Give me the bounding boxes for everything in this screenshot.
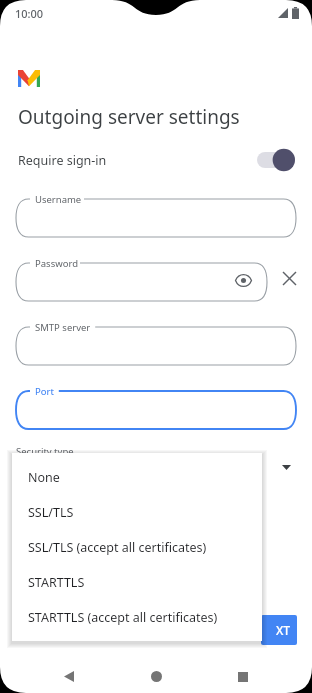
button[interactable]: Clear password <box>276 265 302 291</box>
staticText: Port <box>35 385 54 398</box>
button[interactable]: Back <box>51 660 87 693</box>
button[interactable]: Recent apps <box>225 660 261 693</box>
button[interactable]: Require sign-in <box>0 143 312 177</box>
button[interactable]: XT <box>261 615 297 645</box>
staticText: STARTTLS (accept all certificates) <box>28 609 218 626</box>
staticText: Password <box>35 257 78 270</box>
staticText: Security type <box>16 445 74 458</box>
button[interactable]: SMTP server <box>16 319 296 365</box>
staticText: SSL/TLS (accept all certificates) <box>28 539 207 556</box>
button[interactable]: Home <box>138 660 174 693</box>
staticText: None <box>28 469 60 486</box>
button[interactable]: STARTTLS (accept all certificates) <box>12 600 262 635</box>
staticText: STARTTLS <box>28 574 85 591</box>
staticText: Require sign-in <box>18 152 107 169</box>
button[interactable]: None <box>12 460 262 495</box>
button[interactable]: Password <box>16 255 267 301</box>
button[interactable]: Show password <box>233 270 253 290</box>
button[interactable]: Username <box>16 191 296 237</box>
button[interactable]: SSL/TLS <box>12 495 262 530</box>
button[interactable]: SSL/TLS (accept all certificates) <box>12 530 262 565</box>
button[interactable]: Open security type dropdown <box>276 457 296 477</box>
staticText: Outgoing server settings <box>18 104 240 130</box>
staticText: Username <box>35 193 82 206</box>
button[interactable]: STARTTLS <box>12 565 262 600</box>
staticText: XT <box>276 622 291 638</box>
button[interactable]: Require sign-in toggle <box>256 147 296 173</box>
other: Gmail <box>18 70 40 87</box>
staticText: 10:00 <box>15 6 44 21</box>
button[interactable]: Port <box>16 383 296 429</box>
staticText: SMTP server <box>35 321 91 334</box>
staticText: SSL/TLS <box>28 504 74 521</box>
